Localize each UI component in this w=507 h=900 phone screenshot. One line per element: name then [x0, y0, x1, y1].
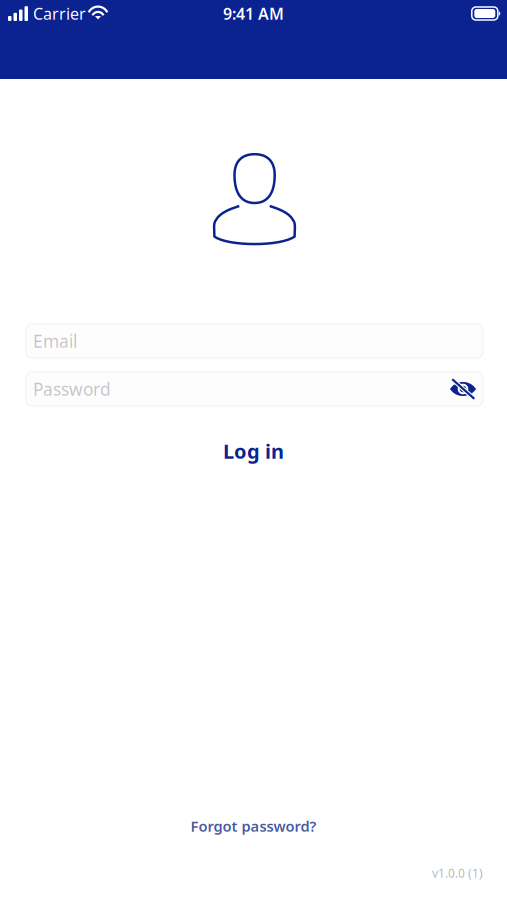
staticText: Email: [33, 329, 77, 352]
staticText: Carrier: [33, 3, 86, 24]
button[interactable]: Show password: [440, 375, 478, 403]
staticText: 9:41 AM: [223, 3, 284, 24]
staticText: Log in: [223, 438, 284, 464]
staticText: Password: [33, 377, 111, 400]
button[interactable]: Forgot password?: [26, 815, 481, 837]
staticText: Forgot password?: [190, 816, 316, 836]
staticText: v1.0.0 (1): [432, 865, 483, 881]
button[interactable]: Log in: [26, 436, 481, 466]
